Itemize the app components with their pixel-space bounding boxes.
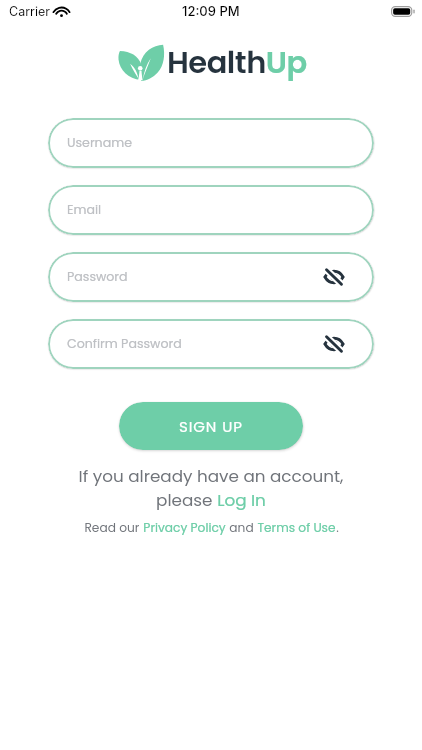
button[interactable]: Show password bbox=[320, 263, 348, 291]
button[interactable]: Terms of Use bbox=[257, 519, 336, 536]
staticText: . bbox=[336, 519, 339, 536]
button[interactable]: SIGN UP bbox=[119, 402, 303, 450]
button[interactable]: Privacy Policy bbox=[143, 519, 226, 536]
staticText: HealthUp bbox=[167, 41, 307, 84]
staticText: Confirm Password bbox=[67, 335, 182, 353]
staticText: Password bbox=[67, 268, 128, 286]
staticText: Read our bbox=[84, 519, 143, 536]
staticText: SIGN UP bbox=[179, 416, 243, 437]
staticText: Email bbox=[67, 201, 102, 219]
button[interactable]: Log In bbox=[217, 488, 266, 512]
button[interactable]: Password bbox=[48, 252, 374, 302]
staticText: and bbox=[226, 519, 257, 536]
button[interactable]: Confirm Password bbox=[48, 319, 374, 369]
staticText: Carrier bbox=[9, 4, 50, 19]
staticText: please bbox=[156, 488, 217, 512]
staticText: Username bbox=[67, 134, 132, 152]
button[interactable]: Username bbox=[48, 118, 374, 168]
button[interactable]: Email bbox=[48, 185, 374, 235]
staticText: 12:09 PM bbox=[182, 3, 240, 19]
staticText: If you already have an account, bbox=[0, 464, 422, 488]
button[interactable]: Show password bbox=[320, 330, 348, 358]
